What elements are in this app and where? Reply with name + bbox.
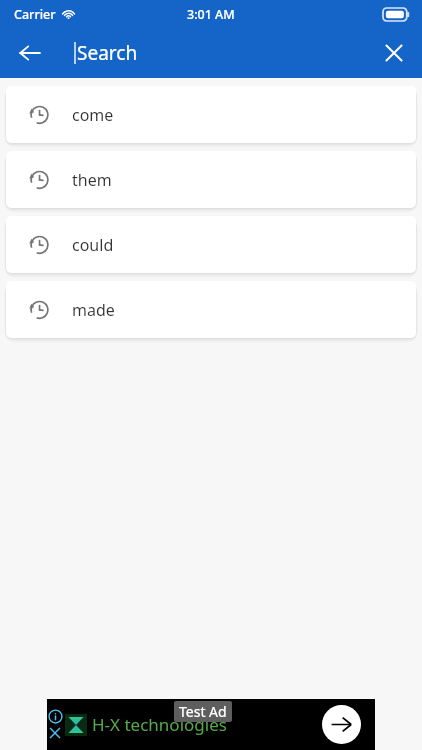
button[interactable]: them	[6, 151, 416, 208]
button[interactable]: Search	[74, 28, 138, 78]
button[interactable]: made	[6, 281, 416, 338]
staticText: Carrier	[14, 6, 56, 23]
staticText: Search	[77, 40, 138, 66]
staticText: Test Ad	[179, 702, 227, 721]
button[interactable]: Open ad	[322, 705, 361, 744]
staticText: 3:01 AM	[187, 6, 235, 23]
button[interactable]: come	[6, 86, 416, 143]
staticText: could	[72, 234, 114, 256]
button[interactable]: Back	[8, 31, 52, 75]
staticText: them	[72, 169, 112, 191]
button[interactable]: Advertisement	[47, 699, 375, 750]
button[interactable]: could	[6, 216, 416, 273]
button[interactable]: Clear search	[373, 32, 415, 74]
staticText: made	[72, 299, 115, 321]
staticText: H-X technologies	[92, 713, 227, 736]
staticText: come	[72, 104, 114, 126]
